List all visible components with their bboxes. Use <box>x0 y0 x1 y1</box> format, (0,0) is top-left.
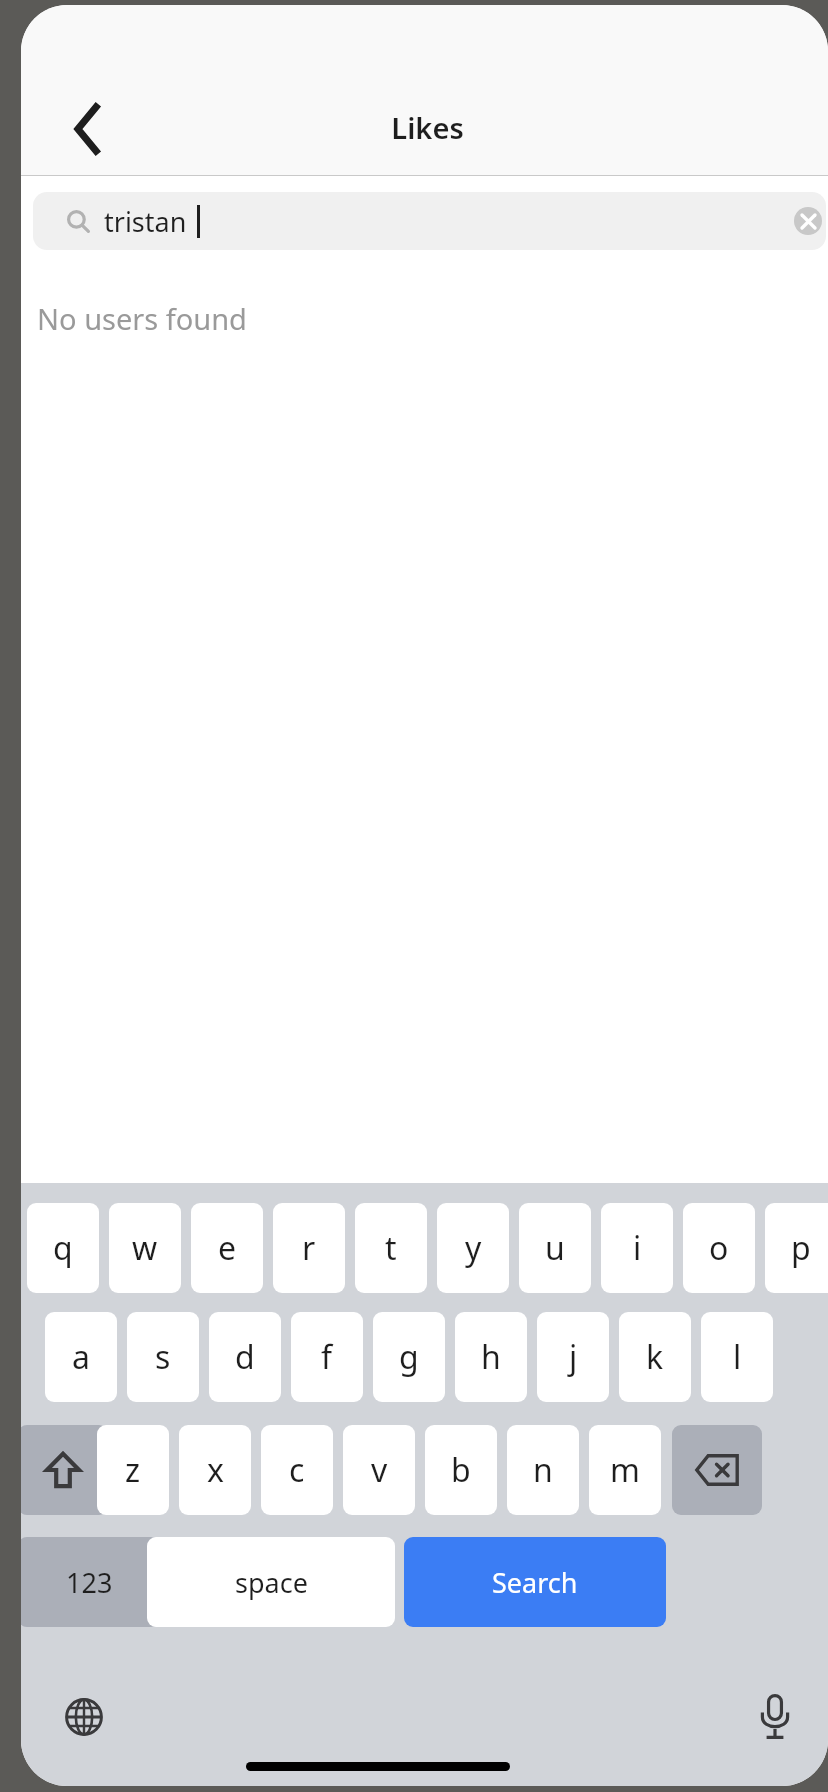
staticText: 123 <box>66 1564 113 1601</box>
staticText: o <box>709 1226 729 1270</box>
staticText: r <box>302 1226 316 1270</box>
staticText: l <box>733 1335 742 1379</box>
button[interactable]: d <box>209 1312 281 1402</box>
button[interactable]: Back <box>43 85 131 173</box>
staticText: s <box>155 1335 171 1379</box>
button[interactable]: k <box>619 1312 691 1402</box>
staticText: u <box>545 1226 565 1270</box>
staticText: No users found <box>37 299 247 338</box>
staticText: j <box>569 1335 578 1379</box>
button[interactable]: space <box>147 1537 395 1627</box>
button[interactable]: p <box>765 1203 828 1293</box>
staticText: w <box>132 1226 158 1270</box>
button[interactable]: Voice input <box>735 1677 815 1757</box>
button[interactable]: Search <box>404 1537 666 1627</box>
staticText: y <box>465 1226 482 1270</box>
staticText: tristan <box>104 203 187 240</box>
button[interactable]: x <box>179 1425 251 1515</box>
button[interactable]: j <box>537 1312 609 1402</box>
button[interactable]: a <box>45 1312 117 1402</box>
staticText: c <box>289 1448 305 1492</box>
staticText: x <box>207 1448 224 1492</box>
staticText: g <box>399 1335 419 1379</box>
button[interactable]: u <box>519 1203 591 1293</box>
button[interactable]: s <box>127 1312 199 1402</box>
staticText: Search <box>492 1564 578 1601</box>
button[interactable]: b <box>425 1425 497 1515</box>
button[interactable]: l <box>701 1312 773 1402</box>
button[interactable]: i <box>601 1203 673 1293</box>
button[interactable]: Search users <box>33 192 826 250</box>
staticText: k <box>646 1335 664 1379</box>
button[interactable]: v <box>343 1425 415 1515</box>
button[interactable]: r <box>273 1203 345 1293</box>
button[interactable]: Backspace <box>672 1425 762 1515</box>
button[interactable]: t <box>355 1203 427 1293</box>
button[interactable]: m <box>589 1425 661 1515</box>
button[interactable]: g <box>373 1312 445 1402</box>
staticText: a <box>72 1335 90 1379</box>
button[interactable]: h <box>455 1312 527 1402</box>
button[interactable]: e <box>191 1203 263 1293</box>
button[interactable]: y <box>437 1203 509 1293</box>
staticText: i <box>633 1226 642 1270</box>
button[interactable]: n <box>507 1425 579 1515</box>
button[interactable]: w <box>109 1203 181 1293</box>
staticText: n <box>533 1448 553 1492</box>
staticText: Likes <box>391 108 464 147</box>
staticText: b <box>451 1448 471 1492</box>
staticText: p <box>791 1226 811 1270</box>
staticText: q <box>53 1226 73 1270</box>
staticText: z <box>125 1448 141 1492</box>
button[interactable]: c <box>261 1425 333 1515</box>
button[interactable]: Clear text <box>794 207 822 235</box>
staticText: m <box>610 1448 640 1492</box>
button[interactable]: o <box>683 1203 755 1293</box>
button[interactable]: z <box>97 1425 169 1515</box>
button[interactable]: 123 <box>21 1537 160 1627</box>
button[interactable]: Switch keyboard language <box>44 1677 124 1757</box>
staticText: e <box>218 1226 237 1270</box>
staticText: h <box>481 1335 501 1379</box>
staticText: v <box>371 1448 388 1492</box>
staticText: t <box>385 1226 397 1270</box>
staticText: space <box>235 1564 308 1601</box>
button[interactable]: f <box>291 1312 363 1402</box>
staticText: f <box>321 1335 333 1379</box>
staticText: d <box>235 1335 255 1379</box>
button[interactable]: Shift <box>21 1425 108 1515</box>
button[interactable]: q <box>27 1203 99 1293</box>
